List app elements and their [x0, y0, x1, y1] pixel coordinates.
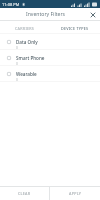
staticText: Data Only	[16, 39, 38, 45]
staticText: Inventory Filters	[26, 11, 65, 18]
button[interactable]: Smart Phone	[0, 50, 100, 66]
staticText: Smart Phone	[16, 55, 45, 61]
staticText: 0	[16, 78, 18, 82]
staticText: 0	[16, 62, 18, 66]
staticText: CLEAR	[18, 191, 31, 196]
button[interactable]: CARRIERS	[0, 22, 50, 35]
staticText: DEVICE TYPES	[61, 26, 89, 31]
button[interactable]: DEVICE TYPES	[50, 22, 100, 35]
button[interactable]: Close	[86, 8, 100, 21]
button[interactable]: CLEAR	[0, 187, 49, 200]
staticText: CARRIERS	[15, 26, 35, 31]
button[interactable]: APPLY	[50, 187, 100, 200]
staticText: 11:08 PM	[2, 2, 20, 7]
staticText: APPLY	[69, 191, 82, 196]
staticText: Wearable	[16, 71, 37, 77]
button[interactable]: Wearable	[0, 66, 100, 82]
staticText: 0	[16, 46, 18, 50]
button[interactable]: Data Only	[0, 34, 100, 50]
